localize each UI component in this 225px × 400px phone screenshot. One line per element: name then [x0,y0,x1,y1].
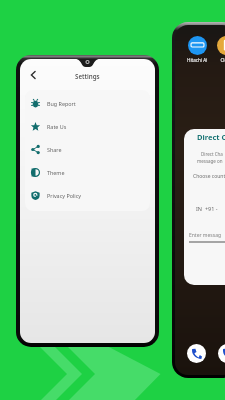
button[interactable]: Theme [25,161,150,184]
button[interactable]: Hitachi AC [187,36,207,63]
staticText: message on [197,158,223,164]
other: Hitachi AC [188,36,207,55]
staticText: Choose count [193,173,225,180]
staticText: Settings [75,72,100,80]
staticText: Clean [220,57,225,63]
button[interactable]: Phone [218,344,225,363]
staticText: Direct Cha [201,151,223,157]
staticText: Direct Ch [197,132,225,142]
staticText: Theme [47,169,65,176]
button[interactable]: Clean [216,36,225,63]
staticText: Hitachi AC [187,57,207,63]
button[interactable]: Rate Us [25,115,150,138]
button[interactable]: Privacy Policy [25,184,150,207]
button[interactable]: Share [25,138,150,161]
staticText: Enter messag [189,232,222,239]
button[interactable]: Back [26,68,40,82]
staticText: IN +91 - [196,205,218,212]
button[interactable]: Bug Report [25,92,150,115]
staticText: Bug Report [47,100,76,107]
button[interactable]: Phone [187,344,206,363]
staticText: Privacy Policy [47,192,82,199]
other: Clean [217,36,225,55]
staticText: Rate Us [47,123,67,130]
staticText: Share [47,146,62,153]
